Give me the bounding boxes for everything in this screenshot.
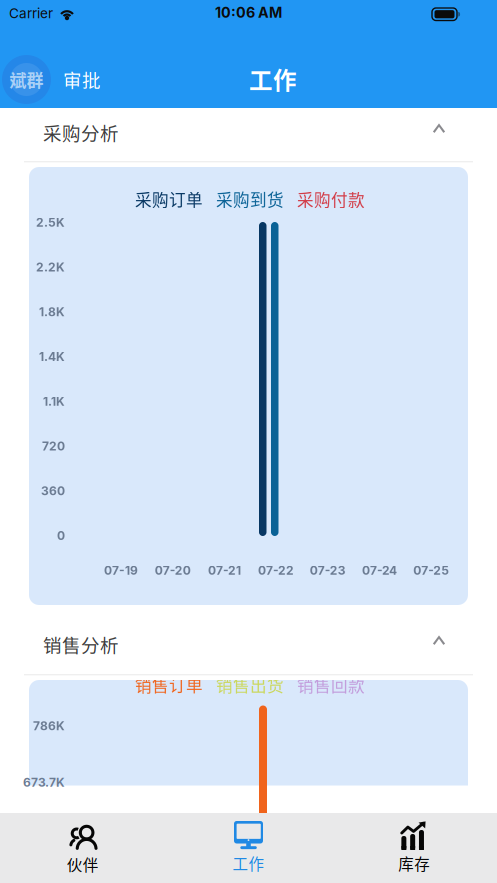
staticText: 360 bbox=[41, 483, 65, 498]
staticText: 10:06 AM bbox=[215, 4, 282, 21]
staticText: Carrier bbox=[9, 5, 53, 21]
staticText: 1.8K bbox=[39, 304, 65, 319]
staticText: 07-24 bbox=[362, 563, 397, 577]
staticText: 07-20 bbox=[155, 563, 191, 577]
staticText: 07-21 bbox=[208, 563, 241, 577]
staticText: 工作 bbox=[249, 62, 297, 96]
staticText: 伙伴 bbox=[67, 853, 99, 875]
button[interactable]: 斌群 bbox=[2, 54, 101, 105]
staticText: 销售出货 bbox=[216, 672, 284, 696]
staticText: 审批 bbox=[63, 66, 101, 93]
button[interactable]: 库存 bbox=[331, 813, 497, 883]
staticText: 0 bbox=[57, 528, 65, 543]
button[interactable]: 采购分析 bbox=[0, 108, 497, 161]
staticText: 1.1K bbox=[43, 394, 65, 408]
staticText: 786K bbox=[33, 718, 65, 733]
staticText: 07-23 bbox=[310, 563, 346, 577]
button[interactable]: 工作 bbox=[166, 813, 331, 883]
staticText: 07-22 bbox=[258, 563, 294, 577]
staticText: 采购订单 bbox=[135, 187, 203, 211]
staticText: 673.7K bbox=[23, 775, 65, 789]
staticText: 库存 bbox=[398, 852, 430, 874]
staticText: 2.5K bbox=[36, 215, 65, 229]
staticText: 07-19 bbox=[104, 563, 138, 577]
button[interactable]: 销售分析 bbox=[0, 605, 497, 674]
button[interactable]: 伙伴 bbox=[0, 813, 166, 883]
staticText: 采购到货 bbox=[216, 187, 284, 211]
staticText: 销售分析 bbox=[43, 631, 119, 658]
staticText: 720 bbox=[42, 439, 65, 453]
staticText: 采购分析 bbox=[43, 119, 119, 146]
staticText: 工作 bbox=[232, 852, 264, 874]
staticText: 销售订单 bbox=[135, 672, 203, 696]
staticText: 07-25 bbox=[413, 563, 449, 577]
staticText: 采购付款 bbox=[297, 187, 365, 211]
staticText: 2.2K bbox=[36, 260, 65, 274]
staticText: 1.4K bbox=[39, 349, 65, 364]
staticText: 销售回款 bbox=[297, 672, 365, 696]
staticText: 斌群 bbox=[9, 67, 43, 92]
